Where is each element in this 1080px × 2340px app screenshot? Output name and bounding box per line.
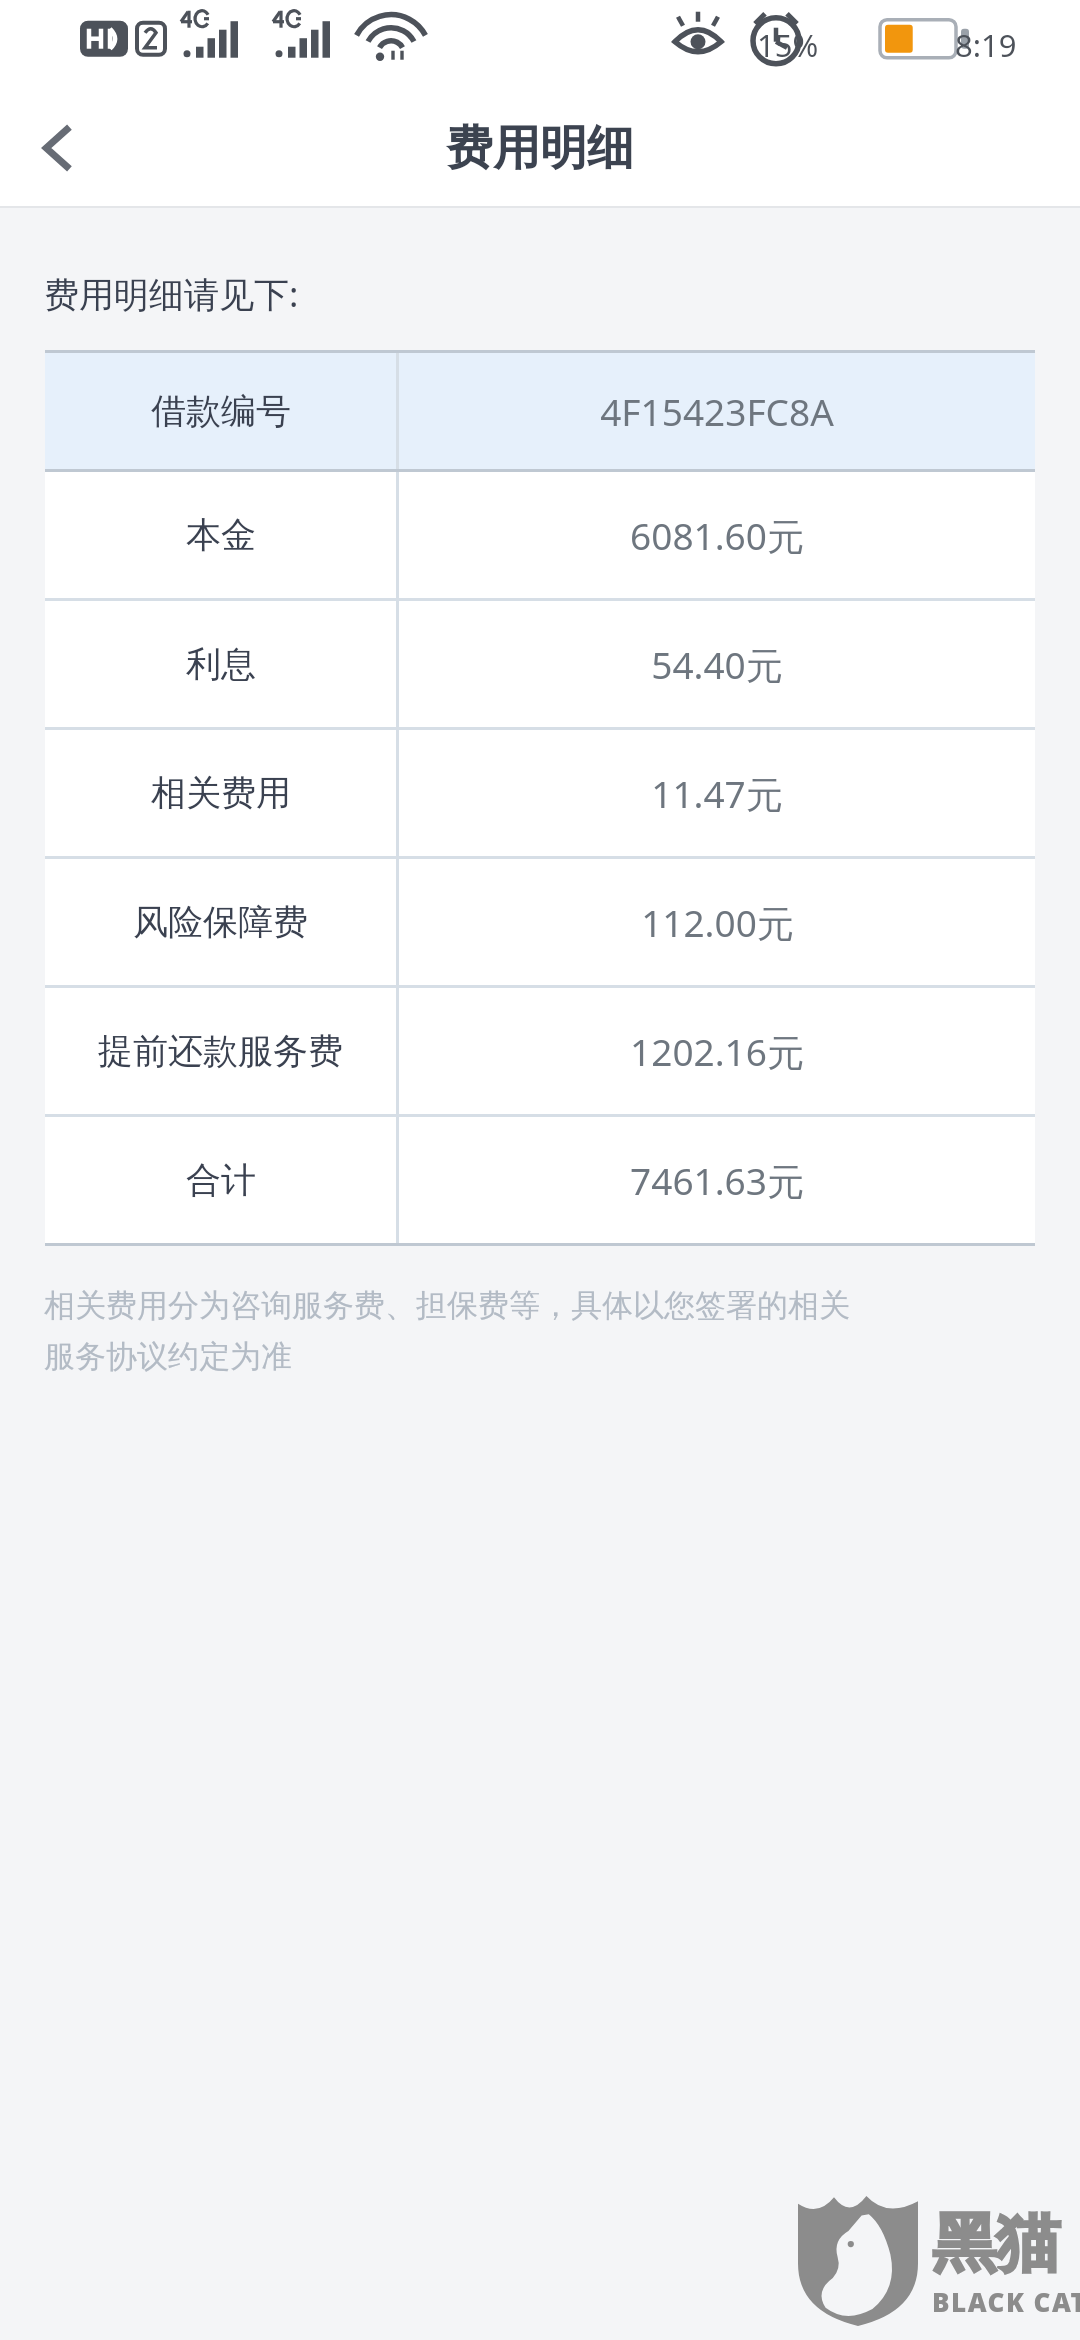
button[interactable]: 提前还款服务费 bbox=[45, 988, 1035, 1114]
staticText: 相关费用 bbox=[151, 771, 291, 815]
staticText: 风险保障费 bbox=[133, 900, 308, 944]
staticText: 服务协议约定为准 bbox=[44, 1337, 292, 1376]
staticText: 费用明细 bbox=[446, 119, 634, 178]
staticText: 8:19 bbox=[955, 24, 1017, 66]
staticText: 4F15423FC8A bbox=[600, 386, 834, 436]
button[interactable]: 利息 bbox=[45, 601, 1035, 727]
staticText: 7461.63元 bbox=[630, 1155, 804, 1206]
staticText: 合计 bbox=[186, 1158, 256, 1202]
staticText: 11.47元 bbox=[651, 768, 783, 819]
staticText: 1202.16元 bbox=[630, 1026, 804, 1077]
staticText: 相关费用分为咨询服务费、担保费等，具体以您签署的相关 bbox=[44, 1286, 850, 1325]
staticText: 借款编号 bbox=[151, 389, 291, 433]
button[interactable]: 相关费用 bbox=[45, 730, 1035, 856]
button[interactable]: Back bbox=[0, 88, 118, 208]
staticText: 15% bbox=[757, 24, 819, 66]
staticText: 本金 bbox=[186, 513, 256, 557]
staticText: 黑猫 bbox=[932, 2203, 1060, 2284]
staticText: 54.40元 bbox=[651, 639, 783, 690]
staticText: 费用明细请见下: bbox=[44, 270, 299, 318]
staticText: 6081.60元 bbox=[630, 510, 804, 561]
staticText: 112.00元 bbox=[641, 897, 794, 948]
button[interactable]: 本金 bbox=[45, 472, 1035, 598]
button[interactable]: 风险保障费 bbox=[45, 859, 1035, 985]
staticText: 利息 bbox=[186, 642, 256, 686]
staticText: BLACK CAT bbox=[932, 2284, 1080, 2319]
button[interactable]: 借款编号 bbox=[45, 353, 1035, 469]
button[interactable]: 合计 bbox=[45, 1117, 1035, 1243]
staticText: 提前还款服务费 bbox=[98, 1029, 343, 1073]
